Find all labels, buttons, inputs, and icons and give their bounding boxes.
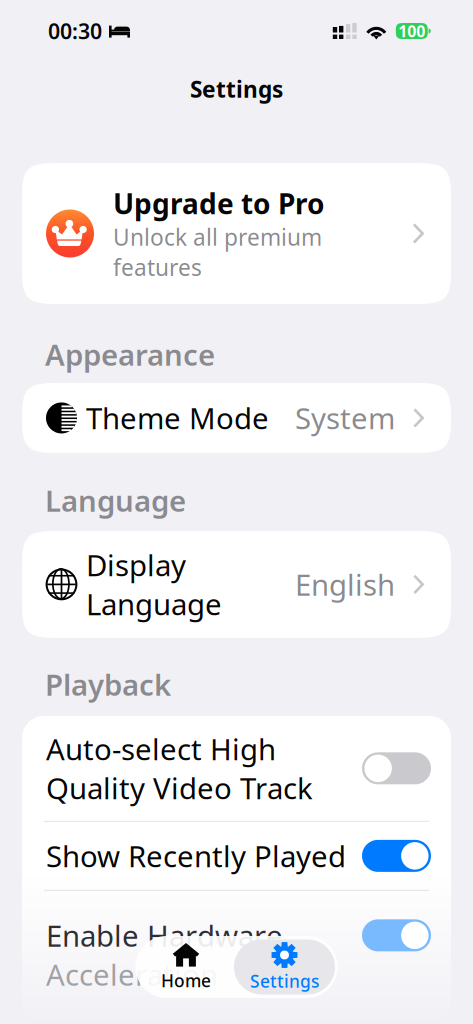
staticText: Language xyxy=(45,481,186,520)
button[interactable]: Settings xyxy=(234,939,335,994)
staticText: 00:30 xyxy=(48,17,102,45)
staticText: Enable Hardware xyxy=(46,916,283,955)
staticText: 100 xyxy=(398,20,425,42)
staticText: Settings xyxy=(250,969,319,992)
button[interactable]: Toggle off xyxy=(362,752,431,784)
staticText: Appearance xyxy=(45,335,215,374)
button[interactable]: Home xyxy=(138,939,234,994)
button[interactable]: Toggle on xyxy=(362,919,431,951)
staticText: English xyxy=(295,565,395,604)
button[interactable]: Display Language xyxy=(22,531,451,638)
staticText: Display Language xyxy=(86,545,222,623)
button[interactable]: Toggle on xyxy=(362,840,431,872)
staticText: Playback xyxy=(45,665,171,704)
staticText: Show Recently Played xyxy=(46,836,346,875)
staticText: Auto-select High Quality Video Track xyxy=(46,729,313,807)
staticText: Upgrade to Pro xyxy=(113,185,325,222)
staticText: Theme Mode xyxy=(86,398,269,437)
staticText: Acceleration xyxy=(46,955,218,994)
staticText: System xyxy=(295,398,395,437)
staticText: Settings xyxy=(190,74,283,104)
button[interactable]: Theme Mode xyxy=(22,383,451,453)
staticText: Home xyxy=(161,969,211,992)
staticText: Unlock all premium features xyxy=(113,222,322,282)
button[interactable]: Upgrade to Pro xyxy=(22,163,451,304)
